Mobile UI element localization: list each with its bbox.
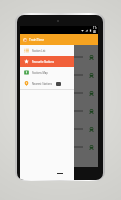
staticText: 11:46	[93, 26, 98, 34]
button[interactable]	[20, 66, 98, 84]
staticText: Stations Map	[32, 71, 48, 75]
button[interactable]	[20, 48, 98, 66]
staticText: Favourite Stations	[32, 60, 54, 64]
staticText: Station List	[32, 49, 46, 53]
button[interactable]: Favourite Stations	[20, 56, 74, 67]
button[interactable]: Nearest Stations	[20, 78, 74, 89]
button[interactable]: Station List	[20, 45, 74, 56]
staticText: Nearest Stations	[32, 82, 53, 86]
button[interactable]	[20, 120, 98, 138]
button[interactable]	[20, 84, 98, 102]
button[interactable]	[20, 102, 98, 120]
button[interactable]: Stations Map	[20, 67, 74, 78]
staticText: TrainTime	[29, 38, 45, 42]
button[interactable]	[20, 138, 98, 156]
button[interactable]: TrainTime	[20, 34, 98, 45]
